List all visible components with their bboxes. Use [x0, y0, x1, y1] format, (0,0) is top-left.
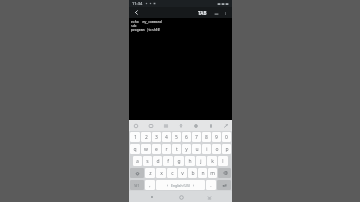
button[interactable]: k	[207, 156, 217, 166]
button[interactable]: 8	[202, 132, 211, 142]
button[interactable]: g	[174, 156, 184, 166]
button[interactable]: r	[162, 144, 171, 154]
staticText: h	[188, 158, 192, 165]
button[interactable]: i	[202, 144, 211, 154]
button[interactable]: e	[152, 144, 161, 154]
button[interactable]: Back	[132, 8, 141, 17]
button[interactable]: o	[212, 144, 221, 154]
staticText: 8	[205, 134, 208, 141]
staticText: 2	[145, 134, 148, 141]
staticText: x	[160, 170, 163, 177]
staticText: sdc	[131, 24, 137, 28]
button[interactable]: p	[222, 144, 231, 154]
button[interactable]: .	[206, 180, 216, 190]
staticText: .	[210, 182, 212, 189]
staticText: 3	[155, 134, 158, 141]
staticText: l	[222, 158, 224, 165]
button[interactable]: s	[143, 156, 152, 166]
staticText: 9	[215, 134, 218, 141]
button[interactable]: Stickers	[131, 121, 140, 130]
button[interactable]: 1	[130, 132, 140, 142]
button[interactable]: z	[145, 168, 155, 178]
staticText: w	[144, 146, 148, 153]
staticText: s	[146, 158, 149, 165]
staticText: !#1	[134, 183, 140, 188]
staticText: z	[149, 170, 152, 177]
staticText: program |tcsh$0	[131, 28, 160, 32]
staticText: c	[171, 170, 174, 177]
staticText: j	[200, 158, 202, 165]
button[interactable]: u	[192, 144, 201, 154]
button[interactable]: q	[130, 144, 140, 154]
button[interactable]: c	[167, 168, 177, 178]
button[interactable]: Enter	[217, 180, 231, 190]
button[interactable]: n	[198, 168, 207, 178]
staticText: 5	[175, 134, 178, 141]
button[interactable]: !#1	[130, 180, 144, 190]
button[interactable]: b	[188, 168, 197, 178]
staticText: 1	[134, 134, 137, 141]
button[interactable]: 4	[162, 132, 171, 142]
button[interactable]: m	[208, 168, 217, 178]
button[interactable]: ,	[145, 180, 155, 190]
staticText: 7	[195, 134, 198, 141]
button[interactable]: GIF	[146, 121, 155, 130]
button[interactable]: Expand toolbar	[221, 121, 230, 130]
button[interactable]: Home	[176, 192, 186, 202]
staticText: n	[201, 170, 205, 177]
staticText: 0	[225, 134, 228, 141]
staticText: 4	[165, 134, 168, 141]
button[interactable]: f	[163, 156, 173, 166]
button[interactable]: Backspace	[218, 168, 231, 178]
button[interactable]: 7	[192, 132, 201, 142]
button[interactable]: x	[156, 168, 166, 178]
button[interactable]: j	[196, 156, 206, 166]
button[interactable]: Hide keyboard	[204, 192, 214, 202]
button[interactable]: Clipboard	[161, 121, 170, 130]
staticText: m	[210, 170, 215, 177]
button[interactable]: h	[185, 156, 195, 166]
button[interactable]: Space	[156, 180, 205, 190]
staticText: v	[181, 170, 184, 177]
button[interactable]: More options	[221, 9, 229, 17]
button[interactable]: l	[218, 156, 228, 166]
button[interactable]: y	[182, 144, 191, 154]
button[interactable]: t	[172, 144, 181, 154]
staticText: 11:34	[132, 1, 143, 6]
staticText: t	[176, 146, 178, 153]
staticText: TAB	[198, 10, 207, 16]
button[interactable]: 0	[222, 132, 231, 142]
button[interactable]: Split keyboard	[206, 121, 215, 130]
staticText: b	[191, 170, 195, 177]
button[interactable]: TAB	[196, 9, 209, 17]
button[interactable]: 2	[141, 132, 151, 142]
staticText: p	[225, 146, 229, 153]
button[interactable]: 9	[212, 132, 221, 142]
button[interactable]: 5	[172, 132, 181, 142]
staticText: k	[211, 158, 214, 165]
staticText: g	[177, 158, 181, 165]
staticText: e	[155, 146, 158, 153]
button[interactable]: Voice input	[176, 121, 185, 130]
button[interactable]: w	[141, 144, 151, 154]
staticText: 6	[185, 134, 188, 141]
button[interactable]: d	[153, 156, 162, 166]
button[interactable]: 6	[182, 132, 191, 142]
button[interactable]: Settings	[191, 121, 200, 130]
staticText: echo my_command	[131, 20, 162, 24]
staticText: d	[156, 158, 160, 165]
staticText: u	[195, 146, 199, 153]
staticText: ,	[149, 182, 151, 189]
staticText: English (US)	[171, 183, 190, 188]
button[interactable]: Minimize	[212, 9, 220, 17]
staticText: q	[133, 146, 137, 153]
staticText: f	[167, 158, 169, 165]
staticText: a	[136, 158, 139, 165]
button[interactable]: Shift	[130, 168, 144, 178]
button[interactable]: 3	[152, 132, 161, 142]
button[interactable]: a	[133, 156, 142, 166]
button[interactable]: Recents	[147, 192, 157, 202]
staticText: o	[215, 146, 219, 153]
staticText: r	[165, 146, 168, 153]
button[interactable]: v	[178, 168, 187, 178]
